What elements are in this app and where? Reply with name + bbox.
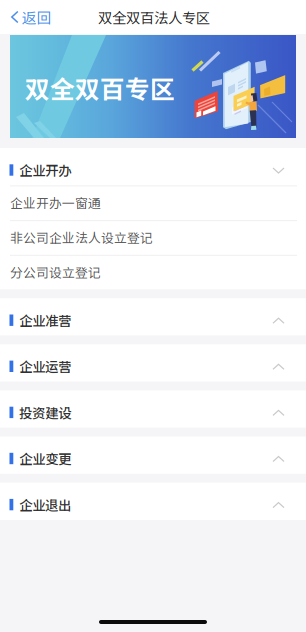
staticText: 双全双百专区: [25, 70, 175, 106]
staticText: 非公司企业法人设立登记: [10, 228, 153, 246]
staticText: 返回: [21, 6, 51, 28]
staticText: 企业运营: [19, 357, 71, 376]
button[interactable]: 企业退出: [0, 483, 306, 520]
button[interactable]: 分公司设立登记: [0, 256, 306, 289]
staticText: 双全双百法人专区: [98, 7, 210, 27]
staticText: 投资建设: [19, 403, 71, 422]
button[interactable]: 投资建设: [0, 390, 306, 428]
staticText: 企业开办一窗通: [10, 193, 101, 212]
staticText: 企业开办: [19, 160, 71, 180]
button[interactable]: 企业运营: [0, 344, 306, 382]
staticText: 分公司设立登记: [10, 263, 101, 281]
button[interactable]: 返回: [0, 0, 61, 33]
staticText: 企业准营: [19, 310, 71, 330]
staticText: 企业退出: [19, 495, 71, 514]
button[interactable]: 企业准营: [0, 298, 306, 336]
button[interactable]: 企业开办: [0, 148, 306, 185]
staticText: 企业变更: [19, 449, 71, 468]
button[interactable]: 企业开办一窗通: [0, 186, 306, 220]
button[interactable]: 非公司企业法人设立登记: [0, 221, 306, 255]
button[interactable]: 企业变更: [0, 436, 306, 474]
